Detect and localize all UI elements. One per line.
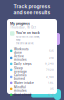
staticText: My progress <box>10 21 30 26</box>
staticText: 1.8L <box>48 81 54 84</box>
button[interactable]: Daily steps <box>10 61 54 66</box>
button[interactable]: Sleep average <box>10 66 54 73</box>
staticText: Workouts done <box>14 47 29 54</box>
staticText: 7h20 <box>46 68 54 71</box>
staticText: 35 <box>50 87 54 90</box>
button[interactable]: Active minutes <box>10 54 54 61</box>
staticText: Calories burned <box>14 73 27 80</box>
staticText: 12 d <box>48 93 54 96</box>
staticText: the streak alive. <box>16 42 34 45</box>
button[interactable]: Water intake <box>10 80 54 85</box>
staticText: You're on track <box>16 31 40 35</box>
button[interactable]: Calories burned <box>10 73 54 80</box>
staticText: Mindful minutes <box>14 85 27 92</box>
staticText: 210 <box>49 56 54 59</box>
staticText: Nice work this week, keep <box>16 35 40 41</box>
staticText: Daily steps <box>14 62 32 66</box>
button[interactable]: Goal streak <box>10 92 54 97</box>
staticText: Track progress <box>13 3 50 9</box>
staticText: 5/5 <box>49 49 54 52</box>
button[interactable]: Workouts done <box>10 47 54 54</box>
staticText: Thursday, 16 Oct <box>10 26 36 29</box>
staticText: Water intake <box>14 81 34 85</box>
staticText: and see results <box>13 9 50 15</box>
staticText: Sleep average <box>14 66 27 73</box>
button[interactable]: Mindful minutes <box>10 85 54 92</box>
staticText: Goal streak <box>14 93 32 96</box>
staticText: 9,240 <box>45 62 54 65</box>
staticText: 2,140 <box>46 75 54 78</box>
staticText: Active minutes <box>14 54 27 61</box>
